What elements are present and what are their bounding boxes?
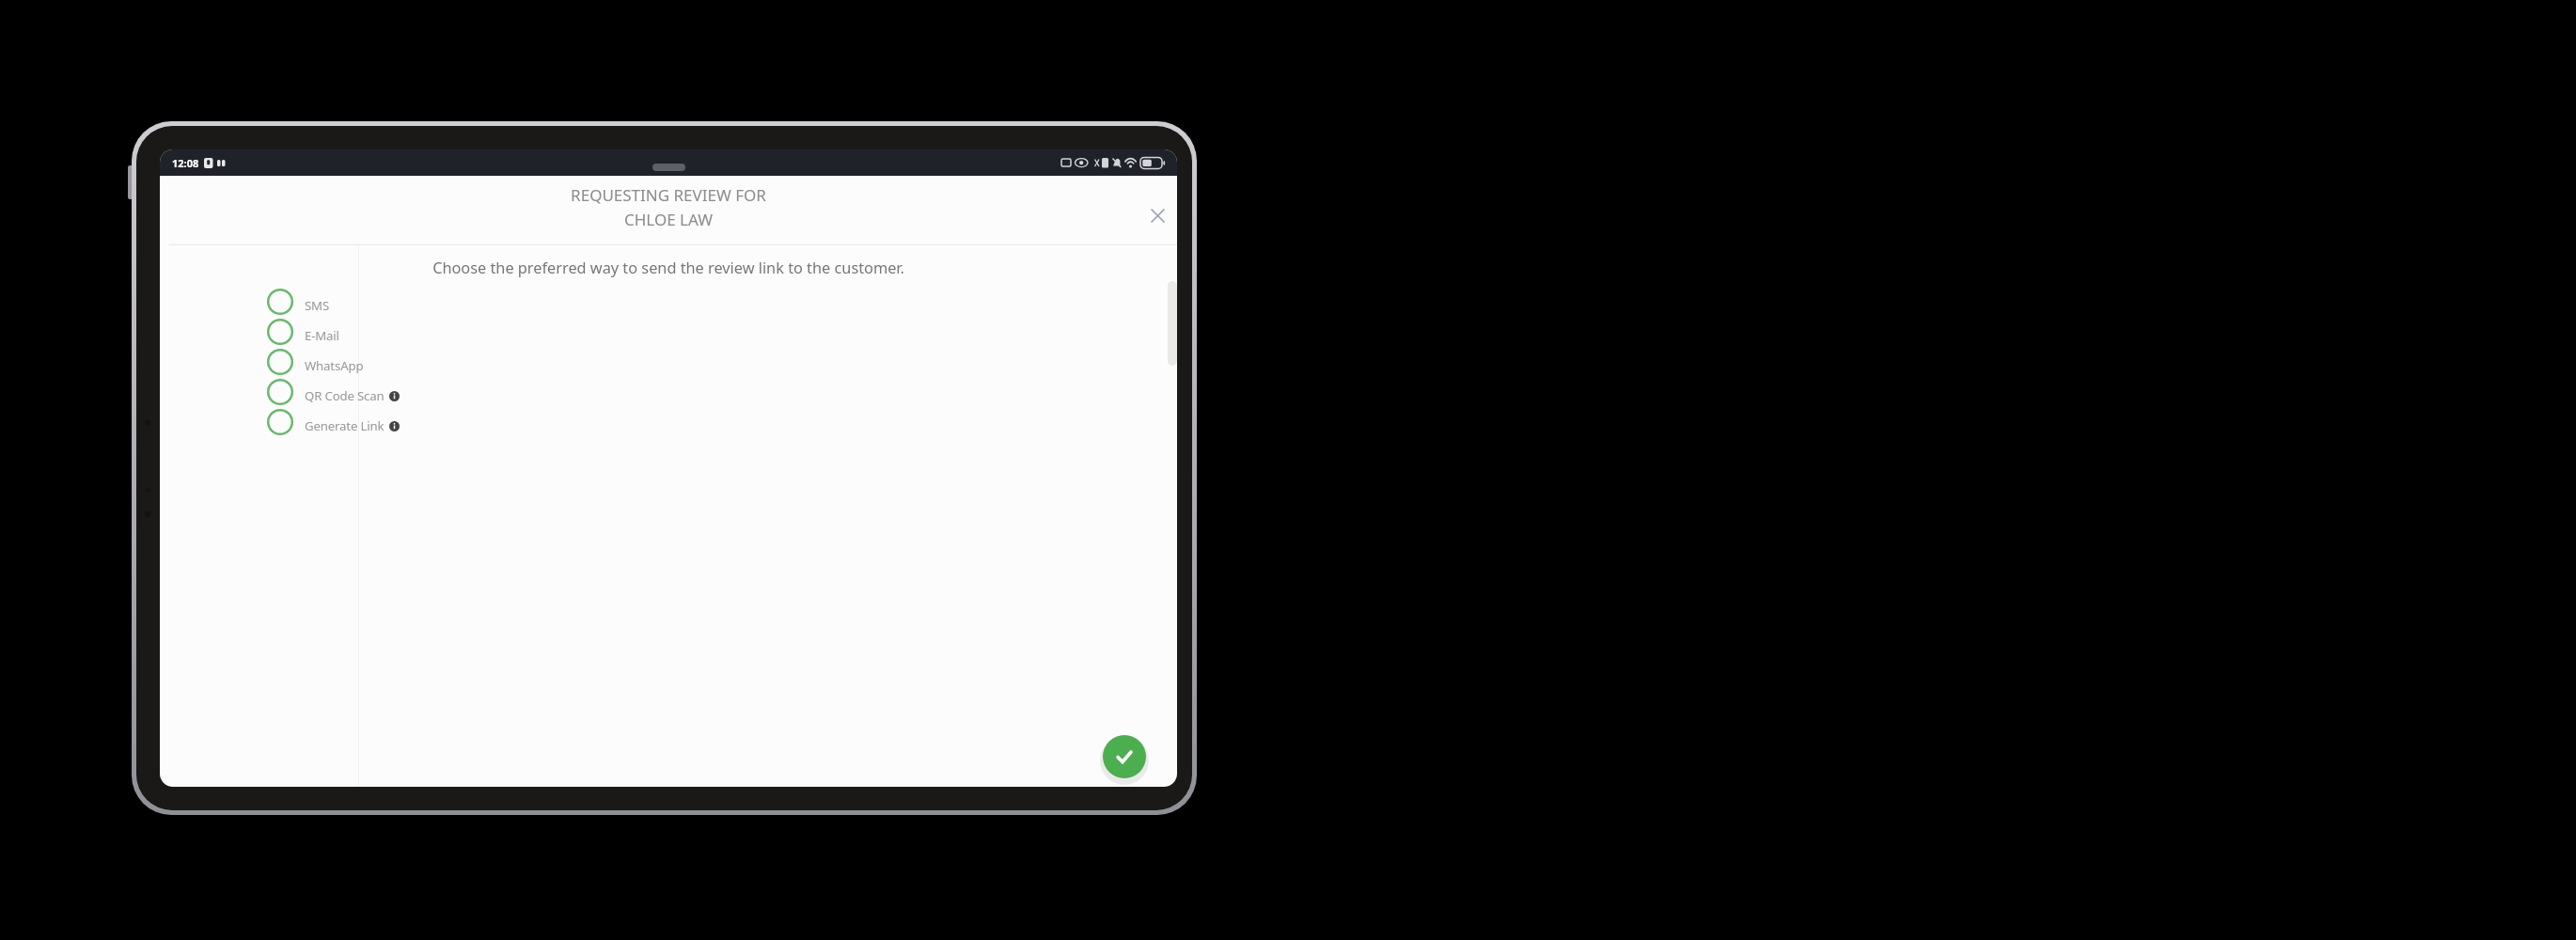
- button[interactable]: QR Code Scan: [267, 379, 400, 405]
- staticText: Choose the preferred way to send the rev…: [160, 258, 1177, 278]
- button[interactable]: Generate Link: [267, 409, 400, 435]
- staticText: SMS: [305, 297, 329, 314]
- staticText: REQUESTING REVIEW FOR CHLOE LAW: [160, 184, 1177, 230]
- staticText: WhatsApp: [305, 357, 364, 374]
- button[interactable]: E-Mail: [267, 319, 339, 345]
- staticText: QR Code Scan: [305, 387, 385, 404]
- button[interactable]: SMS: [267, 289, 329, 315]
- staticText: 12:08: [172, 156, 199, 170]
- staticText: E-Mail: [305, 327, 339, 344]
- staticText: Generate Link: [305, 417, 385, 434]
- button[interactable]: [1103, 735, 1146, 778]
- button[interactable]: [1141, 199, 1173, 231]
- button[interactable]: WhatsApp: [267, 349, 364, 375]
